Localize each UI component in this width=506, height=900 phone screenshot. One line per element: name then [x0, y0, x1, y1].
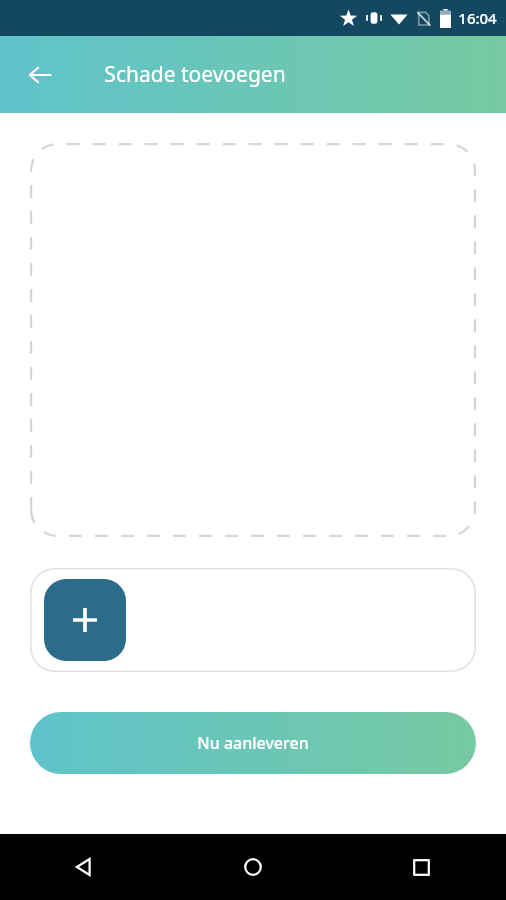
staticText: 16:04 — [458, 8, 497, 28]
button[interactable]: Foto toevoegen — [30, 143, 476, 537]
button[interactable]: Nu aanleveren — [30, 712, 476, 774]
button[interactable]: Toevoegen — [44, 579, 126, 661]
button[interactable]: Recent apps — [337, 834, 506, 900]
staticText: Nu aanleveren — [197, 732, 309, 754]
button[interactable]: Toevoegen — [30, 568, 476, 672]
staticText: Schade toevoegen — [104, 60, 286, 89]
button[interactable]: Home — [168, 834, 337, 900]
button[interactable]: Back — [0, 834, 168, 900]
button[interactable]: Terug — [16, 51, 64, 99]
